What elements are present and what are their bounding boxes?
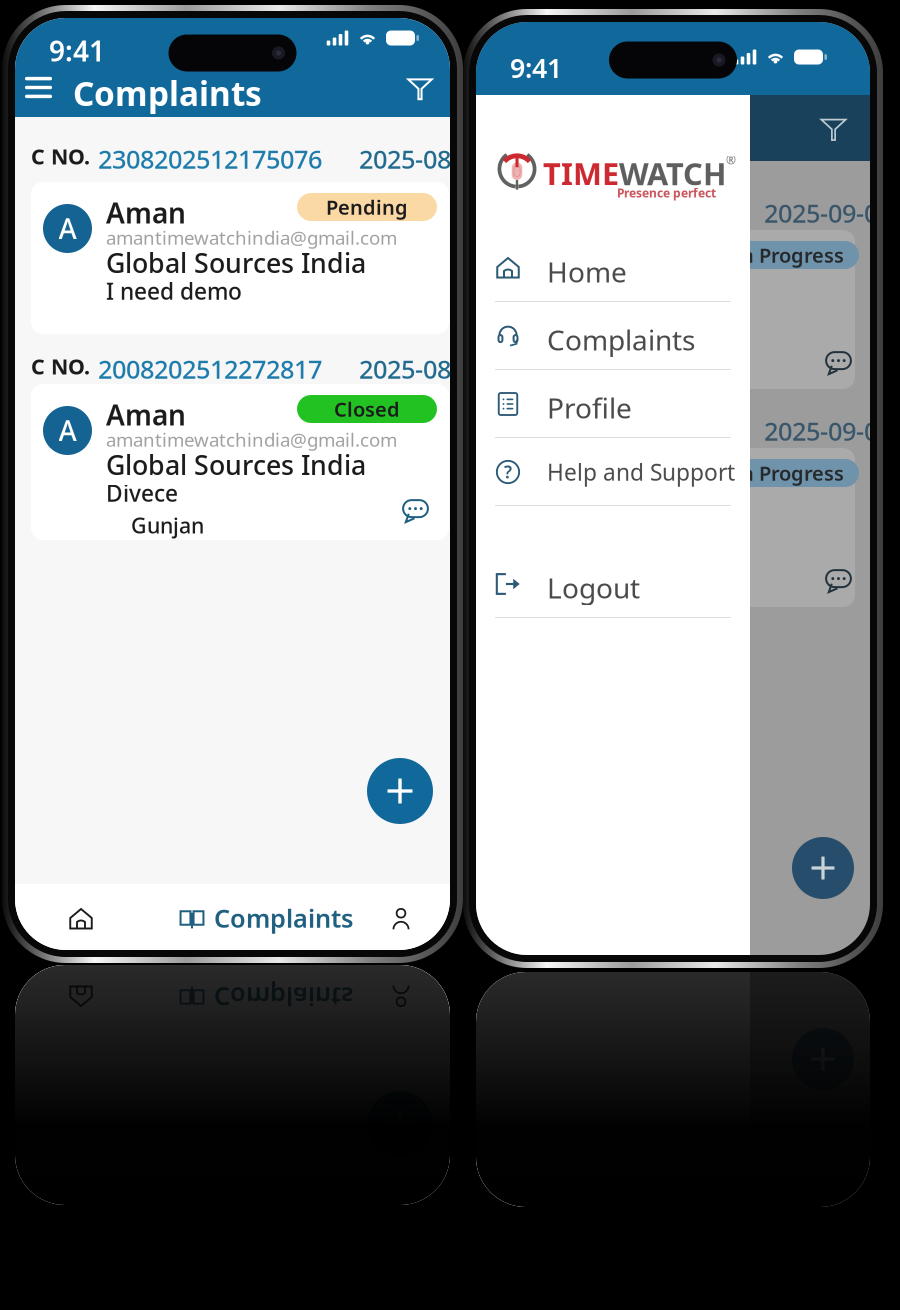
staticText: Complaints (73, 1018, 262, 1062)
staticText: Complaints (214, 901, 353, 935)
button[interactable]: ? (495, 438, 731, 506)
staticText: Global Sources India (106, 447, 366, 482)
staticText: I need demo (106, 276, 242, 306)
staticText: 2025-09-06 (764, 414, 892, 448)
staticText: TIME (543, 153, 619, 194)
staticText: 9:41 (49, 32, 105, 69)
button[interactable]: Filter (403, 71, 437, 105)
staticText: Logout (547, 569, 640, 606)
staticText: 9:41 (510, 50, 562, 85)
button[interactable]: New complaint (367, 758, 433, 824)
staticText: Profile (547, 389, 632, 426)
staticText: amantimewatchindia@gmail.com (106, 427, 397, 452)
staticText: 2025-09-06 (764, 196, 892, 230)
button[interactable]: Menu (16, 68, 61, 107)
staticText: 9:41 (49, 979, 105, 1016)
staticText: Home (547, 253, 627, 290)
staticText: Presence perfect (617, 185, 716, 201)
staticText: Global Sources India (106, 245, 366, 280)
button[interactable]: Logout (495, 550, 731, 618)
staticText: Complaints (73, 71, 262, 115)
staticText: ® (726, 152, 736, 168)
staticText: 2025-08-23 (359, 1089, 487, 1123)
button[interactable]: Complaints (179, 902, 353, 934)
button[interactable]: Menu (16, 1015, 61, 1054)
staticText: ? (504, 460, 512, 483)
staticText: Closed (334, 396, 400, 422)
button[interactable]: Profile (495, 370, 731, 438)
staticText: A (58, 412, 76, 449)
staticText: Help and Support (547, 457, 735, 487)
staticText: 2308202512175076 (91, 142, 322, 176)
staticText: 2008202512272817 (91, 352, 322, 386)
staticText: A (58, 210, 76, 247)
staticText: amantimewatchindia@gmail.com (106, 225, 397, 250)
staticText: In Progress (734, 242, 844, 268)
staticText: Gunjan (131, 511, 204, 539)
staticText: Pending (326, 194, 408, 220)
staticText: Aman (106, 194, 186, 231)
button[interactable]: Home (57, 904, 105, 934)
staticText: C NO. (31, 142, 90, 170)
button[interactable]: Profile (385, 905, 417, 933)
staticText: 2025-08-23 (359, 142, 487, 176)
staticText: Aman (106, 396, 186, 433)
button[interactable]: Complaints (495, 302, 731, 370)
staticText: WATCH (619, 153, 726, 194)
staticText: 2025-08-20 (359, 352, 487, 386)
staticText: C NO. (31, 352, 90, 380)
button[interactable]: Home (495, 234, 731, 302)
staticText: Complaints (547, 321, 695, 358)
staticText: In Progress (734, 460, 844, 486)
staticText: Divece (106, 478, 178, 508)
